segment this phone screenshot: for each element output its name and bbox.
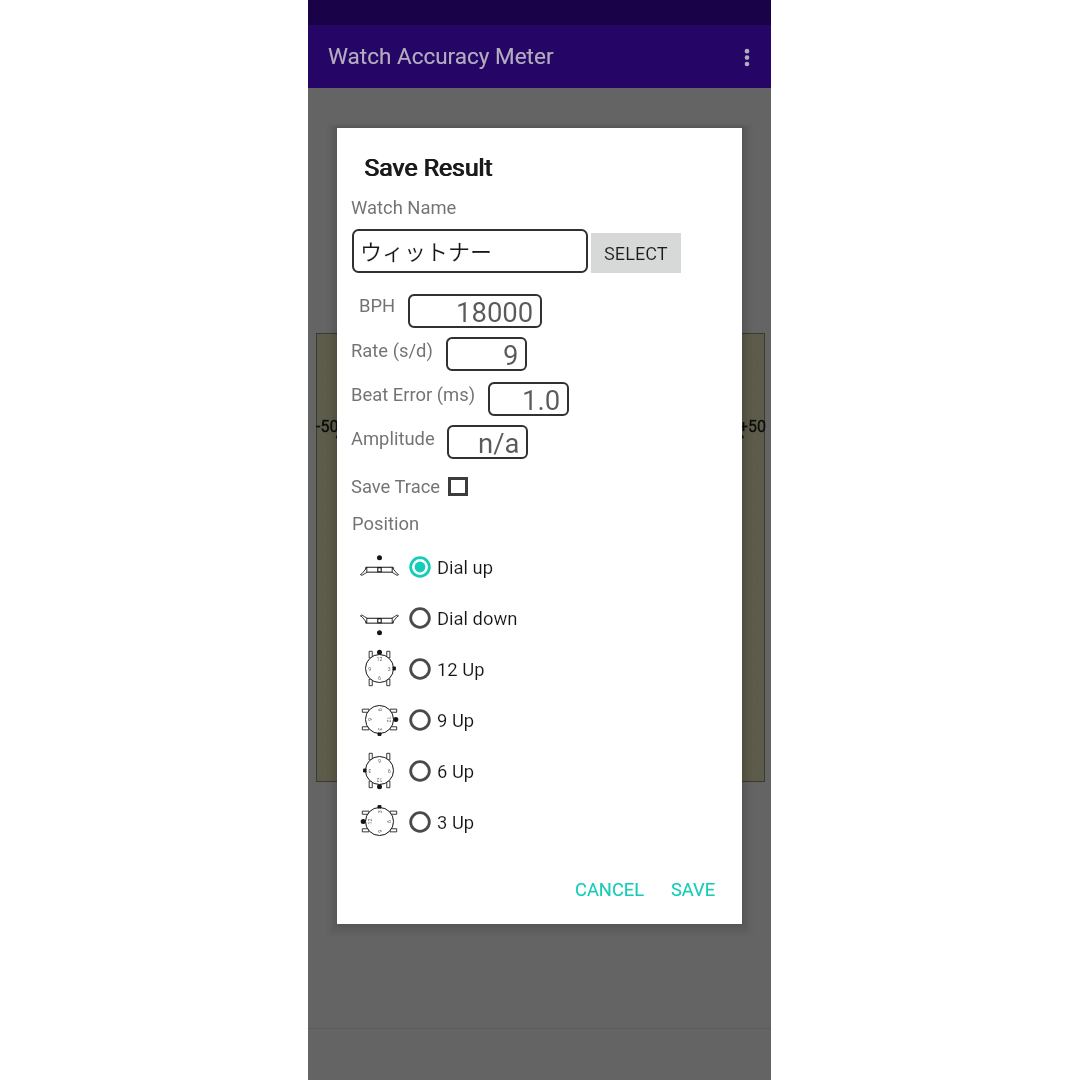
button[interactable]: Save Trace (348, 468, 483, 500)
staticText: Rate (s/d) (351, 340, 433, 362)
staticText: n/a (478, 427, 520, 459)
button[interactable]: 3 Up (337, 796, 742, 847)
button[interactable]: More options (727, 37, 767, 77)
button[interactable]: 18000 (408, 294, 542, 328)
staticText: SELECT (604, 243, 668, 264)
staticText: Save Result (365, 153, 494, 182)
staticText: Watch Name (351, 197, 457, 219)
staticText: Watch Accuracy Meter (328, 43, 554, 69)
staticText: +50 (739, 417, 767, 436)
button[interactable]: 6 Up (337, 745, 742, 796)
staticText: -50 (316, 417, 339, 436)
staticText: Position (352, 513, 420, 535)
staticText: 12 Up (437, 659, 485, 681)
button[interactable]: 9 (446, 337, 527, 371)
staticText: Dial up (437, 557, 494, 579)
staticText: BPH (359, 295, 396, 317)
button[interactable]: Dial down (337, 592, 742, 643)
staticText: Dial down (437, 608, 518, 630)
staticText: Save Trace (351, 476, 441, 498)
staticText: Save Result (364, 153, 493, 182)
staticText: ウィットナー (360, 234, 493, 266)
button[interactable]: SAVE (664, 867, 722, 911)
button[interactable]: SELECT (591, 233, 681, 273)
button[interactable]: 9 Up (337, 694, 742, 745)
button[interactable]: 12 Up (337, 643, 742, 694)
staticText: 6 Up (437, 761, 475, 783)
staticText: 9 (503, 339, 519, 371)
staticText: CANCEL (575, 879, 645, 900)
staticText: 18000 (456, 296, 534, 328)
staticText: Amplitude (351, 428, 435, 450)
staticText: Save Result (364, 153, 493, 182)
staticText: 9 Up (437, 710, 475, 732)
button[interactable]: Dial up (337, 541, 742, 592)
staticText: 1.0 (522, 384, 561, 416)
staticText: Save Result (365, 153, 494, 182)
button[interactable]: n/a (447, 425, 528, 459)
button[interactable]: 1.0 (488, 382, 569, 416)
button[interactable]: ウィットナー (352, 229, 588, 273)
button[interactable]: CANCEL (568, 867, 652, 911)
staticText: 3 Up (437, 812, 475, 834)
staticText: SAVE (671, 879, 716, 900)
staticText: Beat Error (ms) (351, 384, 476, 406)
